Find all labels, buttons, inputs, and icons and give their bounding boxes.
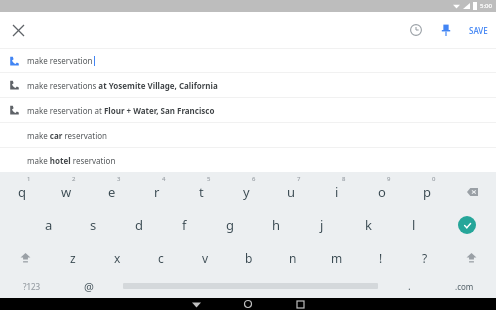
button[interactable]: h (253, 208, 299, 242)
staticText: f (182, 216, 187, 234)
staticText: 7 (297, 175, 301, 183)
button[interactable]: . (386, 274, 433, 298)
button[interactable]: ? (403, 242, 447, 274)
button[interactable]: ?123 (0, 274, 63, 298)
staticText: q (18, 183, 26, 201)
button[interactable]: Pin (431, 15, 461, 45)
button[interactable]: Shift (447, 242, 496, 274)
button[interactable]: Space (115, 274, 386, 298)
button[interactable]: 1 (0, 172, 44, 208)
staticText: make hotel reservation (27, 155, 116, 166)
staticText: 8 (342, 175, 346, 183)
button[interactable]: n (271, 242, 315, 274)
staticText: 6 (252, 175, 256, 183)
button[interactable]: 6 (224, 172, 269, 208)
staticText: y (243, 183, 250, 201)
staticText: h (272, 216, 281, 234)
staticText: l (412, 216, 416, 234)
staticText: .com (455, 281, 474, 292)
button[interactable]: s (71, 208, 116, 242)
button[interactable]: Enter (437, 208, 496, 242)
staticText: 2 (72, 175, 76, 183)
staticText: make reservation at Flour + Water, San F… (27, 105, 215, 116)
staticText: j (320, 216, 324, 234)
button[interactable]: j (299, 208, 345, 242)
button[interactable]: 0 (404, 172, 449, 208)
button[interactable]: Recent (401, 15, 431, 45)
staticText: x (114, 250, 121, 266)
staticText: d (135, 216, 143, 234)
staticText: r (154, 183, 160, 201)
button[interactable]: @ (63, 274, 115, 298)
button[interactable]: l (391, 208, 437, 242)
staticText: . (408, 279, 411, 293)
staticText: 1 (27, 175, 31, 183)
staticText: o (378, 183, 386, 201)
staticText: make reservations at Yosemite Village, C… (27, 80, 218, 91)
button[interactable]: make hotel reservation (0, 148, 496, 172)
staticText: 5:00 (480, 2, 492, 10)
button[interactable]: b (227, 242, 271, 274)
staticText: a (45, 216, 53, 234)
button[interactable]: 3 (89, 172, 134, 208)
button[interactable]: 5 (179, 172, 224, 208)
button[interactable]: g (207, 208, 253, 242)
button[interactable]: make car reservation (0, 123, 496, 147)
staticText: @ (84, 279, 94, 294)
button[interactable]: k (345, 208, 391, 242)
button[interactable]: Home (222, 298, 274, 310)
button[interactable]: 9 (359, 172, 404, 208)
button[interactable]: f (161, 208, 207, 242)
staticText: u (287, 183, 296, 201)
staticText: t (199, 183, 204, 201)
staticText: v (202, 250, 209, 266)
button[interactable]: x (95, 242, 139, 274)
button[interactable]: make reservations at Yosemite Village, C… (0, 73, 496, 97)
staticText: s (90, 216, 97, 234)
staticText: make reservation (27, 55, 93, 66)
staticText: 0 (432, 175, 436, 183)
staticText: m (331, 250, 343, 266)
staticText: ?123 (23, 281, 41, 292)
staticText: 5 (207, 175, 211, 183)
button[interactable]: a (26, 208, 71, 242)
button[interactable]: z (50, 242, 95, 274)
button[interactable]: make reservation at Flour + Water, San F… (0, 98, 496, 122)
button[interactable]: 4 (134, 172, 179, 208)
button[interactable]: Shift (0, 242, 50, 274)
button[interactable]: c (139, 242, 183, 274)
staticText: p (423, 183, 431, 201)
staticText: i (335, 183, 339, 201)
button[interactable]: SAVE (469, 12, 488, 48)
staticText: ? (422, 250, 428, 266)
staticText: make car reservation (27, 130, 107, 141)
button[interactable]: ! (359, 242, 403, 274)
button[interactable]: Close (0, 12, 36, 48)
staticText: 9 (387, 175, 391, 183)
button[interactable]: 2 (44, 172, 89, 208)
button[interactable]: .com (433, 274, 496, 298)
button[interactable]: Backspace (449, 172, 496, 208)
button[interactable]: d (116, 208, 161, 242)
button[interactable]: 8 (314, 172, 359, 208)
button[interactable]: make reservation (0, 49, 496, 72)
staticText: ! (379, 250, 383, 266)
button[interactable]: Recents (274, 298, 326, 310)
button[interactable]: v (183, 242, 227, 274)
staticText: 4 (162, 175, 166, 183)
staticText: n (289, 250, 297, 266)
staticText: c (158, 250, 164, 266)
button[interactable]: Back (170, 298, 222, 310)
staticText: k (365, 216, 372, 234)
staticText: w (61, 183, 72, 201)
staticText: 3 (117, 175, 121, 183)
staticText: b (245, 250, 253, 266)
staticText: e (108, 183, 116, 201)
button[interactable]: 7 (269, 172, 314, 208)
button[interactable]: m (315, 242, 359, 274)
staticText: z (70, 250, 76, 266)
staticText: SAVE (469, 25, 488, 36)
staticText: g (226, 216, 234, 234)
